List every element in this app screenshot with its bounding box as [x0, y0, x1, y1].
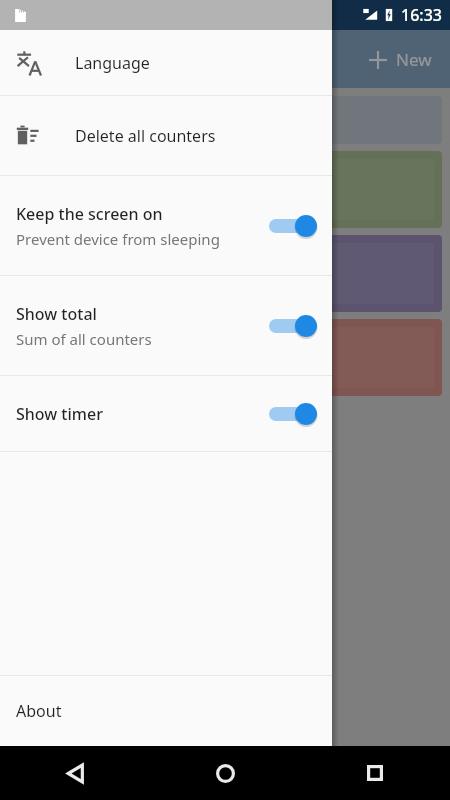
- button[interactable]: Increment counter: [8, 235, 442, 312]
- button[interactable]: Recent apps: [351, 749, 399, 797]
- button[interactable]: New: [364, 42, 436, 77]
- button[interactable]: Keep the screen on: [0, 176, 332, 275]
- button[interactable]: Increment counter: [8, 151, 442, 228]
- staticText: Sum of all counters: [16, 329, 152, 349]
- staticText: About: [16, 700, 62, 722]
- button[interactable]: Delete all counters: [0, 96, 332, 175]
- staticText: Keep the screen on: [16, 203, 163, 225]
- staticText: 16:33: [401, 4, 442, 26]
- staticText: Show total: [16, 303, 97, 325]
- button[interactable]: Language: [0, 30, 332, 95]
- button[interactable]: Reset: [8, 96, 442, 144]
- staticText: Delete all counters: [75, 125, 216, 147]
- button[interactable]: Home: [201, 749, 249, 797]
- staticText: Prevent device from sleeping: [16, 229, 220, 249]
- button[interactable]: About: [0, 676, 332, 746]
- staticText: Language: [75, 52, 150, 74]
- staticText: Show timer: [16, 403, 103, 425]
- staticText: New: [396, 48, 432, 71]
- button[interactable]: Show timer: [0, 376, 332, 451]
- button[interactable]: Show total: [0, 276, 332, 375]
- button[interactable]: Increment counter: [8, 319, 442, 396]
- button[interactable]: Back: [51, 749, 99, 797]
